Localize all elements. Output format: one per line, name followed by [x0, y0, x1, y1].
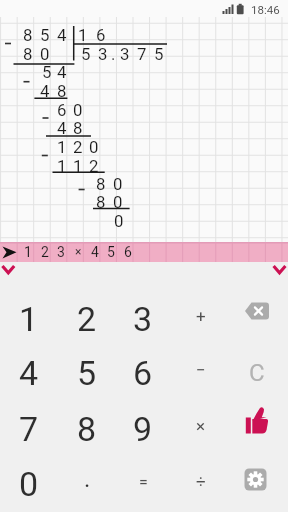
staticText: 0 [114, 211, 124, 231]
staticText: 1 [73, 156, 83, 176]
staticText: 6 [57, 100, 67, 120]
button[interactable] [228, 401, 286, 457]
staticText: 0 [73, 100, 83, 120]
staticText: 0 [113, 174, 123, 194]
button[interactable] [228, 456, 286, 512]
staticText: − [196, 360, 206, 380]
button[interactable] [0, 242, 288, 262]
staticText: 9 [133, 409, 153, 449]
button[interactable]: 8 [58, 401, 116, 457]
staticText: 0 [113, 192, 123, 212]
button[interactable]: ÷ [172, 456, 230, 512]
staticText: 2 [89, 156, 99, 176]
staticText: 0 [19, 464, 39, 504]
staticText: 6 [133, 353, 153, 393]
staticText: 1 [57, 137, 67, 157]
staticText: 4 [57, 25, 67, 45]
button[interactable]: 1 [0, 291, 58, 347]
staticText: × [75, 245, 82, 259]
staticText: 0 [89, 137, 99, 157]
button[interactable] [0, 261, 22, 278]
staticText: 5 [40, 25, 50, 45]
staticText: 7 [137, 44, 147, 64]
button[interactable]: 6 [114, 345, 172, 401]
button[interactable]: 9 [114, 401, 172, 457]
button[interactable]: C [228, 345, 286, 401]
button[interactable]: 2 [58, 291, 116, 347]
staticText: 0 [40, 44, 50, 64]
staticText: . [84, 465, 91, 493]
button[interactable] [228, 291, 286, 347]
staticText: 8 [23, 25, 33, 45]
staticText: 2 [77, 299, 97, 339]
staticText: 2 [73, 137, 83, 157]
staticText: 5 [107, 244, 115, 260]
button[interactable]: 3 [114, 291, 172, 347]
staticText: 8 [57, 81, 67, 101]
staticText: ÷ [196, 471, 206, 491]
button[interactable]: 4 [0, 345, 58, 401]
staticText: 1 [78, 25, 88, 45]
staticText: 6 [96, 25, 106, 45]
staticText: × [196, 416, 206, 436]
staticText: 5 [42, 62, 52, 82]
staticText: 5 [154, 44, 164, 64]
staticText: 5 [81, 44, 91, 64]
staticText: 8 [23, 44, 33, 64]
button[interactable]: × [172, 401, 230, 457]
button[interactable] [266, 261, 288, 278]
staticText: + [196, 306, 206, 326]
button[interactable]: 7 [0, 401, 58, 457]
staticText: 8 [96, 192, 106, 212]
staticText: 1 [24, 244, 32, 260]
staticText: 4 [19, 353, 39, 393]
staticText: C [249, 359, 265, 387]
staticText: 8 [96, 174, 106, 194]
staticText: 2 [41, 244, 49, 260]
button[interactable]: 0 [0, 456, 58, 512]
staticText: 6 [124, 244, 132, 260]
staticText: 4 [57, 62, 67, 82]
staticText: 8 [73, 118, 83, 138]
staticText: 4 [57, 118, 67, 138]
button[interactable]: . [58, 456, 116, 512]
button[interactable]: − [172, 345, 230, 401]
staticText: 18:46 [251, 3, 280, 16]
staticText: 4 [40, 81, 50, 101]
staticText: 5 [77, 353, 97, 393]
button[interactable]: 5 [58, 345, 116, 401]
staticText: = [139, 473, 148, 492]
button[interactable]: + [172, 291, 230, 347]
staticText: 1 [19, 299, 39, 339]
staticText: 3 [57, 244, 65, 260]
staticText: 1 [57, 156, 67, 176]
staticText: 3 [98, 44, 108, 64]
staticText: 3 [120, 44, 130, 64]
button[interactable]: = [114, 456, 172, 512]
staticText: 3 [133, 299, 153, 339]
staticText: 7 [19, 409, 39, 449]
staticText: . [111, 44, 116, 64]
staticText: 4 [91, 244, 99, 260]
staticText: 8 [77, 409, 97, 449]
